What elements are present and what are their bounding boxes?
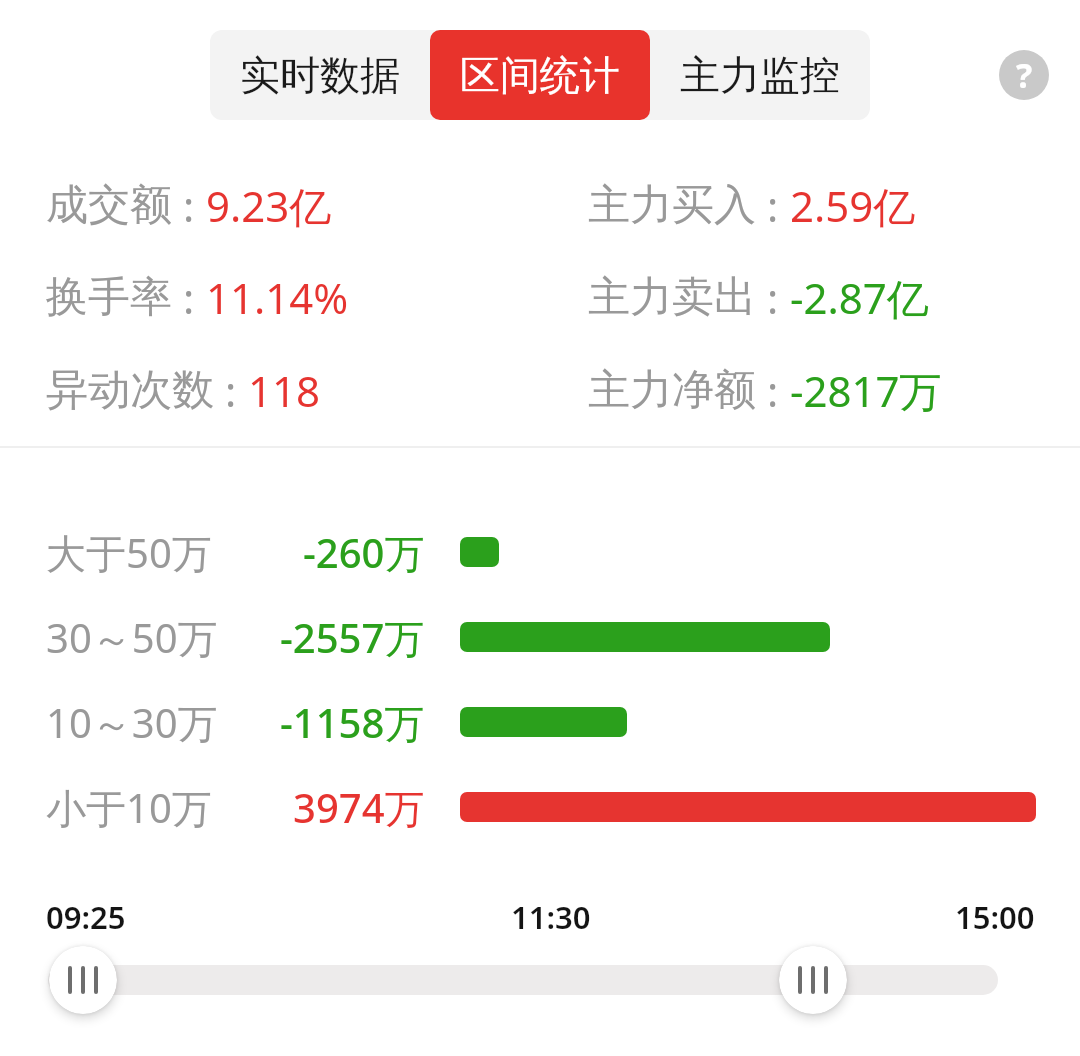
staticText: 主力买入 [588,179,756,232]
staticText: 10～30万 [46,695,218,750]
staticText: 11:30 [511,896,591,938]
button[interactable]: ? [999,50,1049,100]
staticText: -260万 [303,525,425,580]
staticText: : [756,362,790,419]
staticText: -2817万 [790,362,942,419]
staticText: 成交额 [46,179,172,232]
staticText: 2.59亿 [790,177,916,234]
staticText: 主力卖出 [588,271,756,324]
staticText: : [172,269,206,326]
staticText: 小于10万 [46,780,212,835]
button[interactable]: 区间统计 [430,30,650,120]
staticText: 大于50万 [46,525,212,580]
staticText: 3974万 [293,780,425,835]
staticText: 09:25 [46,896,126,938]
staticText: 主力净额 [588,364,756,417]
staticText: 15:00 [955,896,1035,938]
staticText: -2557万 [280,610,425,665]
staticText: 9.23亿 [206,177,332,234]
staticText: : [172,177,206,234]
staticText: 异动次数 [46,364,214,417]
staticText: 换手率 [46,271,172,324]
staticText: : [214,362,248,419]
staticText: 11.14% [206,269,349,326]
button[interactable] [49,946,117,1014]
staticText: : [756,177,790,234]
staticText: 区间统计 [460,50,620,100]
staticText: -2.87亿 [790,269,929,326]
button[interactable] [779,946,847,1014]
staticText: : [756,269,790,326]
staticText: 主力监控 [680,50,840,100]
staticText: -1158万 [280,695,425,750]
staticText: 118 [248,362,321,419]
staticText: ? [1016,52,1033,98]
staticText: 30～50万 [46,610,218,665]
button[interactable]: 主力监控 [650,30,870,120]
button[interactable]: 实时数据 [210,30,430,120]
staticText: 实时数据 [240,50,400,100]
